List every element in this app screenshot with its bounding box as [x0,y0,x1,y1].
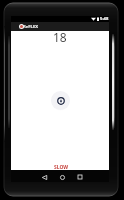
button[interactable]: Recents [74,171,86,183]
staticText: 18 [53,29,67,45]
button[interactable]: Target [51,91,70,110]
button[interactable]: Home [56,171,68,183]
button[interactable]: Back [38,171,50,183]
staticText: ReFLEX [23,24,39,30]
staticText: 5:48 [100,16,109,22]
staticText: SLOW [54,164,69,171]
